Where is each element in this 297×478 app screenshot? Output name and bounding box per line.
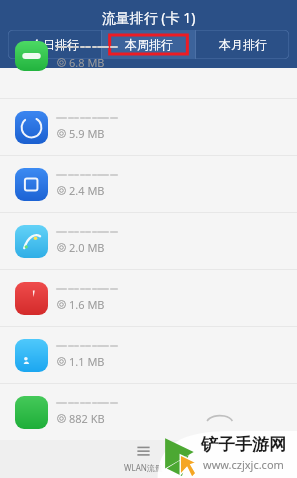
staticText: WLAN流量: [124, 462, 163, 473]
button[interactable]: 2.0 MB: [0, 213, 297, 269]
staticText: 2.4 MB: [69, 183, 105, 198]
staticText: 2.0 MB: [69, 240, 105, 255]
button[interactable]: 882 KB: [0, 384, 297, 440]
button[interactable]: 本月排行: [196, 30, 289, 59]
button[interactable]: [0, 441, 297, 459]
staticText: 铲子手游网: [201, 434, 286, 455]
button[interactable]: WLAN 流量: [124, 443, 163, 473]
staticText: 本周排行: [125, 37, 173, 52]
staticText: 1.1 MB: [69, 354, 105, 369]
staticText: 流量排行 (卡 1): [0, 8, 297, 27]
button[interactable]: 2.4 MB: [0, 156, 297, 212]
button[interactable]: 今日排行: [8, 30, 101, 59]
staticText: 6.8 MB: [69, 55, 105, 70]
staticText: www.czjxjc.com: [203, 457, 284, 472]
staticText: 今日排行: [31, 37, 79, 52]
staticText: 本月排行: [219, 37, 267, 52]
button[interactable]: 1.6 MB: [0, 270, 297, 326]
button[interactable]: 本周排行: [102, 30, 195, 59]
staticText: 882 KB: [69, 411, 105, 426]
button[interactable]: 5.9 MB: [0, 99, 297, 155]
button[interactable]: 6.8 MB: [0, 68, 297, 98]
button[interactable]: 1.1 MB: [0, 327, 297, 383]
staticText: 1.6 MB: [69, 297, 105, 312]
staticText: 5.9 MB: [69, 126, 105, 141]
